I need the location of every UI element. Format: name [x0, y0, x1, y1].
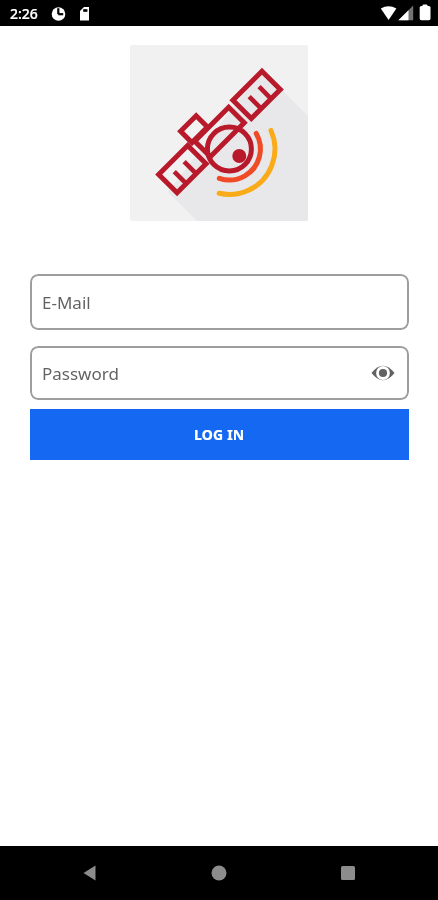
button[interactable] — [324, 849, 372, 897]
button[interactable]: Password — [30, 346, 409, 400]
button[interactable]: LOG IN — [30, 409, 409, 460]
button[interactable]: E-Mail — [30, 274, 409, 330]
staticText: 2:26 — [10, 4, 38, 23]
staticText: LOG IN — [194, 425, 245, 444]
button[interactable] — [66, 849, 114, 897]
button[interactable] — [195, 849, 243, 897]
staticText: Password — [42, 362, 119, 385]
staticText: E-Mail — [42, 291, 91, 314]
